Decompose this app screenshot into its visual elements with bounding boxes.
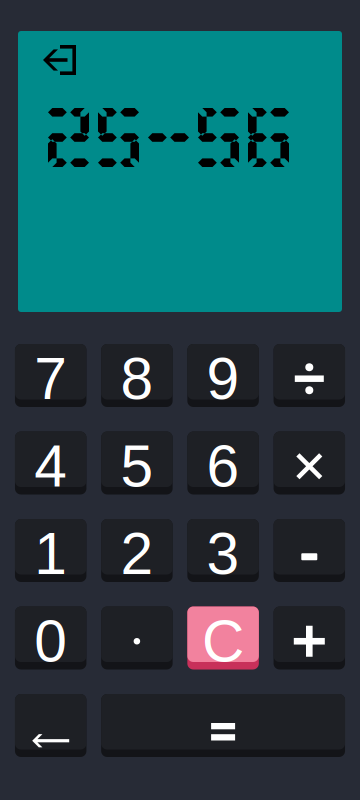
button[interactable]: Equals — [101, 694, 345, 757]
staticText: 0 — [34, 608, 67, 674]
staticText: 1 — [34, 521, 67, 586]
button[interactable]: 4 — [15, 431, 86, 494]
staticText: 6 — [207, 433, 240, 499]
button[interactable] — [274, 431, 345, 494]
button[interactable]: 0 — [15, 606, 86, 669]
staticText: 9 — [207, 346, 240, 411]
staticText: 8 — [120, 346, 153, 411]
button[interactable]: 7 — [15, 344, 86, 407]
button[interactable] — [274, 344, 345, 407]
button[interactable] — [274, 519, 345, 582]
button[interactable]: 3 — [187, 519, 259, 582]
button[interactable]: 9 — [187, 344, 259, 407]
staticText: 7 — [34, 346, 67, 411]
button[interactable]: C — [187, 606, 259, 669]
staticText: 5 — [120, 433, 153, 499]
button[interactable]: Exit — [43, 45, 77, 76]
button[interactable]: 2 — [101, 519, 173, 582]
button[interactable]: 1 — [15, 519, 86, 582]
staticText: 2 — [120, 521, 153, 586]
button[interactable] — [101, 606, 173, 669]
button[interactable] — [274, 606, 345, 669]
staticText: 3 — [207, 521, 240, 586]
staticText: C — [202, 608, 244, 674]
button[interactable]: 5 — [101, 431, 173, 494]
staticText: 4 — [34, 433, 67, 499]
button[interactable]: 6 — [187, 431, 259, 494]
button[interactable]: Backspace — [15, 694, 86, 757]
button[interactable]: 8 — [101, 344, 173, 407]
